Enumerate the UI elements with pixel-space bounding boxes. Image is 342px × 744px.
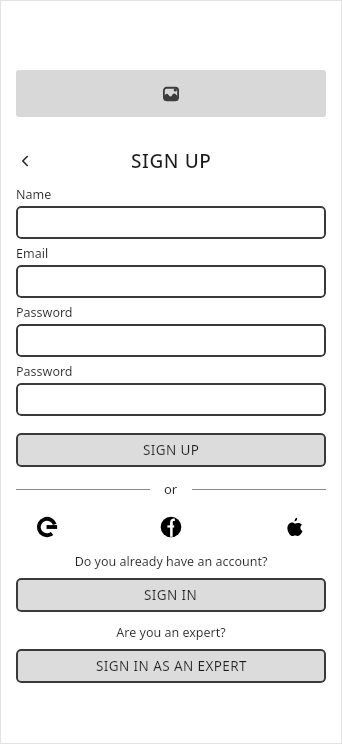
staticText: SIGN IN <box>144 586 198 604</box>
staticText: Email <box>16 245 49 262</box>
staticText: Are you an expert? <box>0 624 342 641</box>
button[interactable]: SIGN IN <box>16 578 326 612</box>
button[interactable]: Sign up with Facebook <box>154 510 188 544</box>
button[interactable]: Add photo <box>16 70 326 117</box>
button[interactable]: Email input field <box>16 265 326 298</box>
staticText: Password <box>16 363 73 380</box>
staticText: or <box>164 480 178 498</box>
staticText: SIGN UP <box>131 148 212 174</box>
button[interactable]: Sign up with Apple <box>278 510 312 544</box>
button[interactable]: Name input field <box>16 206 326 239</box>
button[interactable]: Back <box>10 146 40 176</box>
staticText: Password <box>16 304 73 321</box>
button[interactable]: SIGN UP <box>16 433 326 467</box>
button[interactable]: Sign up with Google <box>30 510 64 544</box>
button[interactable]: Password input field <box>16 383 326 416</box>
button[interactable]: Password input field <box>16 324 326 357</box>
staticText: SIGN UP <box>143 441 200 459</box>
staticText: Do you already have an account? <box>0 553 342 570</box>
staticText: Name <box>16 186 52 203</box>
staticText: SIGN IN AS AN EXPERT <box>96 657 247 675</box>
button[interactable]: SIGN IN AS AN EXPERT <box>16 649 326 683</box>
